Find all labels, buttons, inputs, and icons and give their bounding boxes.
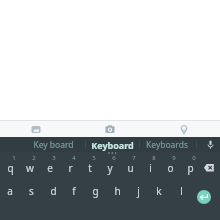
staticText: t: [88, 161, 92, 175]
staticText: i: [149, 161, 152, 175]
staticText: o: [167, 161, 174, 175]
button[interactable]: o: [160, 160, 180, 176]
button[interactable]: d: [43, 183, 63, 199]
staticText: 1: [12, 154, 16, 162]
staticText: 2: [32, 154, 36, 162]
button[interactable]: [28, 121, 44, 137]
staticText: q: [7, 161, 14, 175]
button[interactable]: k: [149, 183, 169, 199]
staticText: h: [114, 184, 121, 198]
staticText: w: [26, 161, 34, 175]
staticText: 5: [92, 154, 96, 162]
button[interactable]: j: [128, 183, 148, 199]
button[interactable]: [197, 190, 211, 204]
button[interactable]: Key board: [20, 137, 86, 152]
button[interactable]: q: [0, 160, 20, 176]
button[interactable]: y: [100, 160, 120, 176]
staticText: Keyboard: [91, 139, 134, 151]
staticText: e: [47, 161, 53, 175]
button[interactable]: u: [120, 160, 140, 176]
button[interactable]: l: [171, 183, 191, 199]
staticText: r: [68, 161, 73, 175]
button[interactable]: [201, 137, 220, 152]
button[interactable]: g: [85, 183, 105, 199]
staticText: Keyboards: [146, 139, 188, 151]
button[interactable]: s: [21, 183, 41, 199]
button[interactable]: f: [64, 183, 84, 199]
staticText: a: [7, 184, 13, 198]
button[interactable]: [102, 121, 118, 137]
staticText: k: [156, 184, 162, 198]
button[interactable]: t: [80, 160, 100, 176]
staticText: d: [50, 184, 57, 198]
staticText: j: [137, 184, 140, 198]
staticText: l: [180, 184, 183, 198]
button[interactable]: p: [180, 160, 200, 176]
staticText: 7: [132, 154, 136, 162]
button[interactable]: r: [60, 160, 80, 176]
staticText: s: [29, 184, 34, 198]
staticText: u: [127, 161, 134, 175]
button[interactable]: i: [140, 160, 160, 176]
staticText: f: [72, 184, 76, 198]
button[interactable]: e: [40, 160, 60, 176]
staticText: 6: [112, 154, 116, 162]
staticText: Key board: [33, 139, 74, 151]
staticText: 3: [52, 154, 56, 162]
staticText: p: [187, 161, 194, 175]
button[interactable]: [199, 159, 219, 176]
staticText: 0: [192, 154, 196, 162]
staticText: 9: [172, 154, 176, 162]
button[interactable]: [176, 121, 192, 137]
button[interactable]: a: [0, 183, 20, 199]
button[interactable]: h: [107, 183, 127, 199]
button[interactable]: Keyboard: [86, 137, 138, 152]
staticText: g: [92, 184, 99, 198]
staticText: y: [107, 161, 113, 175]
staticText: 4: [72, 154, 76, 162]
button[interactable]: Keyboards: [139, 137, 195, 152]
staticText: 8: [152, 154, 156, 162]
button[interactable]: w: [20, 160, 40, 176]
